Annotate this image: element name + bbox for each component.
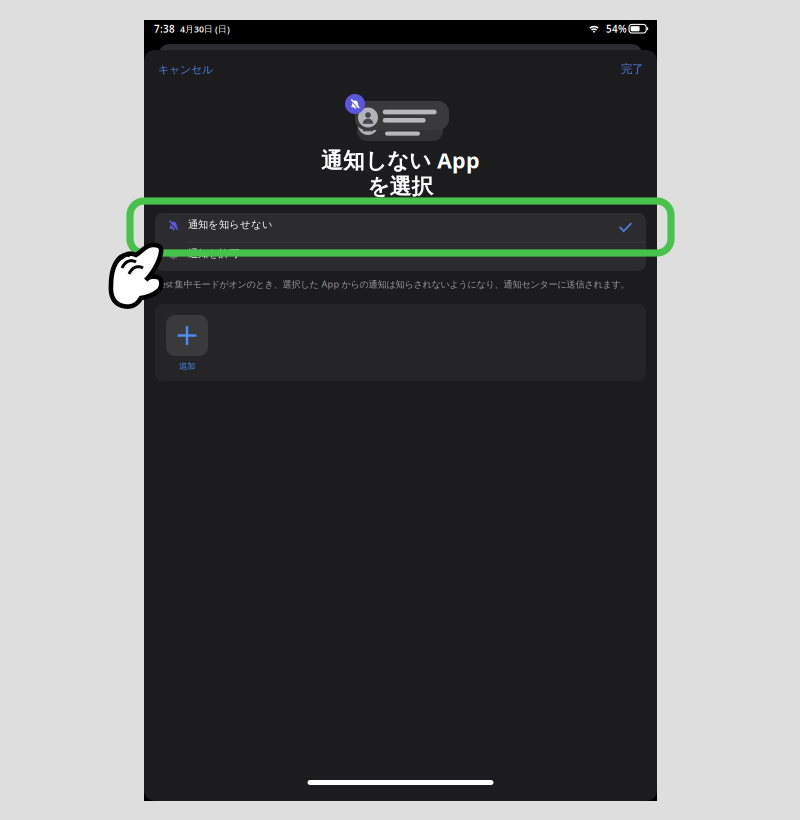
button[interactable]: キャンセル (146, 54, 256, 86)
button[interactable]: 通知を許可 (155, 242, 646, 271)
staticText: 54% (606, 22, 627, 36)
staticText: 通知を許可 (188, 247, 239, 260)
staticText: 7:38 (154, 22, 175, 36)
button[interactable]: 完了 (545, 54, 655, 86)
staticText: を選択 (367, 173, 433, 200)
button[interactable]: 追加 (166, 315, 226, 373)
staticText: 通知しない App (321, 145, 480, 175)
staticText: 4月30日 (日) (180, 23, 230, 35)
staticText: キャンセル (158, 63, 213, 76)
staticText: test 集中モードがオンのとき、選択した App からの通知は知らされないよう… (157, 278, 629, 290)
staticText: 追加 (179, 361, 195, 371)
button[interactable]: 通知を知らせない (155, 213, 646, 242)
staticText: 通知を知らせない (188, 218, 273, 231)
staticText: 完了 (621, 62, 643, 76)
